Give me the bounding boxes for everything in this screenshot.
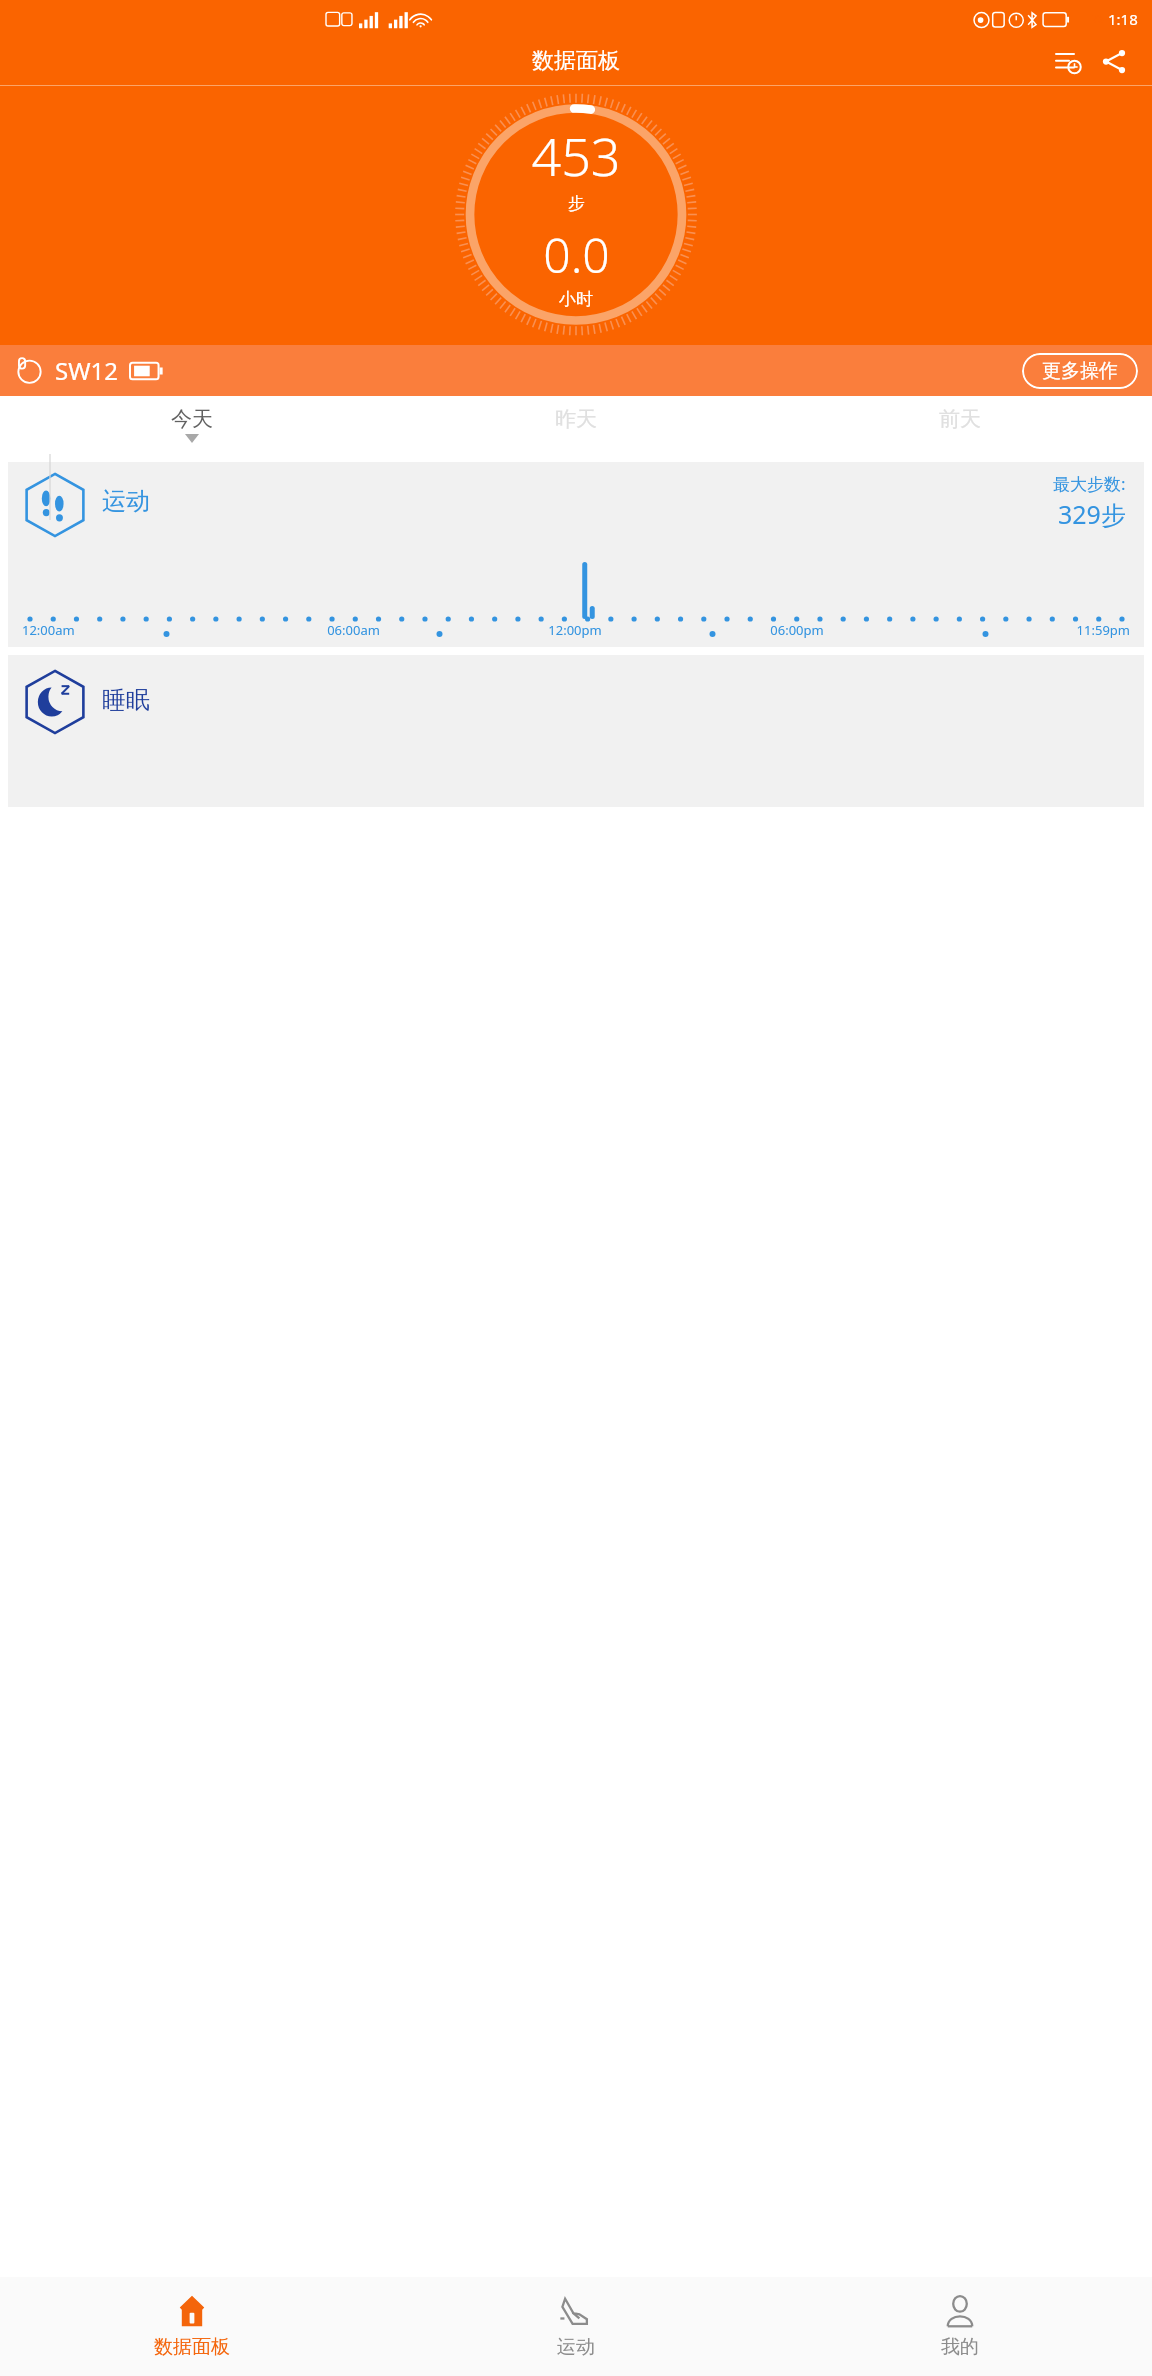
button[interactable]: 运动 bbox=[8, 462, 1144, 647]
staticText: 11:59pm bbox=[908, 621, 1130, 639]
staticText: 12:00am bbox=[22, 621, 243, 639]
staticText: 步 bbox=[568, 193, 585, 214]
staticText: 今天 bbox=[171, 406, 213, 432]
button[interactable]: 睡眠 bbox=[8, 655, 1144, 807]
staticText: 06:00am bbox=[243, 621, 464, 639]
staticText: 329步 bbox=[1058, 497, 1126, 531]
staticText: 453 bbox=[531, 120, 621, 191]
staticText: 数据面板 bbox=[532, 47, 620, 75]
staticText: 昨天 bbox=[555, 406, 597, 432]
button[interactable]: 数据面板 bbox=[0, 2277, 384, 2376]
staticText: 0.0 bbox=[543, 222, 610, 287]
staticText: 运动 bbox=[557, 2335, 595, 2359]
staticText: 运动 bbox=[102, 486, 150, 516]
button[interactable]: 我的 bbox=[768, 2277, 1152, 2376]
staticText: 最大步数: bbox=[1053, 472, 1126, 495]
staticText: 小时 bbox=[559, 289, 593, 310]
button[interactable]: History bbox=[1048, 41, 1088, 81]
button[interactable]: 运动 bbox=[384, 2277, 768, 2376]
button[interactable]: Share bbox=[1094, 41, 1134, 81]
staticText: 1:18 bbox=[1108, 9, 1138, 29]
button[interactable]: 昨天 bbox=[384, 396, 768, 454]
button[interactable]: 今天 bbox=[0, 396, 384, 454]
staticText: 数据面板 bbox=[154, 2335, 230, 2359]
staticText: 睡眠 bbox=[102, 685, 150, 715]
staticText: 我的 bbox=[941, 2335, 979, 2359]
button[interactable]: 前天 bbox=[768, 396, 1152, 454]
staticText: 更多操作 bbox=[1042, 359, 1118, 383]
staticText: 12:00pm bbox=[464, 621, 686, 639]
staticText: SW12 bbox=[55, 354, 118, 387]
staticText: 06:00pm bbox=[686, 621, 908, 639]
staticText: 前天 bbox=[939, 406, 981, 432]
button[interactable]: 更多操作 bbox=[1022, 353, 1138, 389]
